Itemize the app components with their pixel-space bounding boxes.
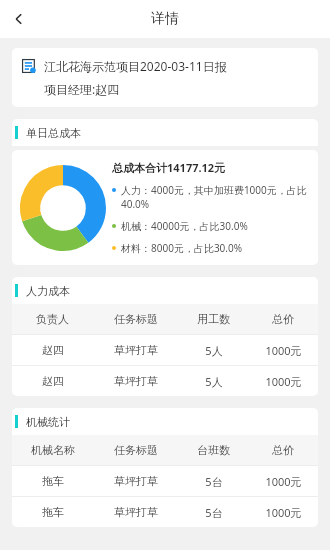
staticText: 机械：40000元，占比30.0% bbox=[121, 219, 248, 233]
staticText: 材料：8000元，占比30.0% bbox=[121, 241, 243, 255]
staticText: 人力：4000元，其中加班费1000元，占比40.0% bbox=[121, 183, 308, 211]
staticText: 单日总成本 bbox=[26, 126, 81, 140]
staticText: 机械统计 bbox=[26, 415, 70, 429]
staticText: 5台 bbox=[205, 474, 223, 489]
staticText: 1000元 bbox=[265, 374, 302, 389]
button[interactable]: 江北花海示范项目2020-03-11日报 bbox=[12, 48, 318, 107]
staticText: 机械名称 bbox=[31, 443, 75, 457]
staticText: 赵四 bbox=[42, 374, 64, 388]
staticText: 负责人 bbox=[36, 312, 69, 326]
staticText: 项目经理:赵四 bbox=[44, 81, 120, 97]
staticText: 草坪打草 bbox=[114, 505, 158, 519]
staticText: 台班数 bbox=[197, 443, 230, 457]
staticText: 任务标题 bbox=[114, 443, 158, 457]
staticText: 拖车 bbox=[42, 505, 64, 519]
staticText: 5人 bbox=[205, 374, 223, 389]
staticText: 1000元 bbox=[265, 474, 302, 489]
staticText: 人力成本 bbox=[26, 284, 70, 298]
staticText: 总价 bbox=[272, 443, 294, 457]
staticText: 草坪打草 bbox=[114, 374, 158, 388]
staticText: 任务标题 bbox=[114, 312, 158, 326]
staticText: 赵四 bbox=[42, 343, 64, 357]
staticText: 用工数 bbox=[197, 312, 230, 326]
staticText: 1000元 bbox=[265, 505, 302, 520]
staticText: 5台 bbox=[205, 505, 223, 520]
staticText: 草坪打草 bbox=[114, 343, 158, 357]
staticText: 总成本合计14177.12元 bbox=[112, 160, 226, 175]
staticText: 草坪打草 bbox=[114, 474, 158, 488]
staticText: 总价 bbox=[272, 312, 294, 326]
staticText: 5人 bbox=[205, 343, 223, 358]
staticText: 拖车 bbox=[42, 474, 64, 488]
staticText: 1000元 bbox=[265, 343, 302, 358]
button[interactable]: Back bbox=[0, 0, 38, 38]
staticText: 详情 bbox=[151, 10, 179, 28]
staticText: 江北花海示范项目2020-03-11日报 bbox=[44, 58, 227, 74]
